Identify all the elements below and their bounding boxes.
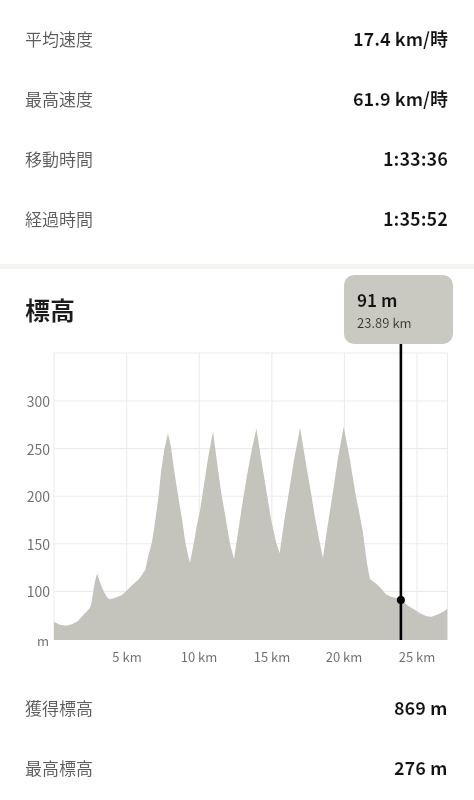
- staticText: 移動時間: [25, 146, 93, 171]
- staticText: 250: [0, 439, 50, 459]
- staticText: 150: [0, 534, 50, 554]
- staticText: 276 m: [394, 754, 448, 780]
- staticText: m: [0, 631, 49, 650]
- staticText: 最高標高: [25, 755, 93, 780]
- staticText: 経過時間: [25, 206, 93, 231]
- staticText: 200: [0, 486, 50, 506]
- staticText: 17.4 km/時: [353, 25, 448, 51]
- button[interactable]: 移動時間: [0, 128, 474, 188]
- staticText: 23.89 km: [357, 313, 412, 332]
- staticText: 100: [0, 581, 50, 601]
- button[interactable]: 91 m: [344, 275, 453, 344]
- button[interactable]: 最高速度: [0, 68, 474, 128]
- staticText: 1:35:52: [383, 205, 448, 231]
- staticText: 91 m: [357, 287, 398, 312]
- staticText: 10 km: [169, 647, 229, 666]
- staticText: 15 km: [242, 647, 302, 666]
- staticText: 5 km: [97, 647, 157, 666]
- staticText: 869 m: [394, 694, 448, 720]
- staticText: 最高速度: [25, 86, 93, 111]
- staticText: 平均速度: [25, 26, 93, 51]
- button[interactable]: 獲得標高: [0, 677, 474, 737]
- staticText: 25 km: [387, 647, 447, 666]
- button[interactable]: 平均速度: [0, 8, 474, 68]
- staticText: 20 km: [314, 647, 374, 666]
- staticText: 300: [0, 391, 50, 411]
- staticText: 獲得標高: [25, 695, 93, 720]
- button[interactable]: 経過時間: [0, 188, 474, 248]
- button[interactable]: 最高標高: [0, 737, 474, 797]
- staticText: 61.9 km/時: [353, 85, 448, 111]
- staticText: 1:33:36: [383, 145, 448, 171]
- staticText: 標高: [25, 291, 76, 327]
